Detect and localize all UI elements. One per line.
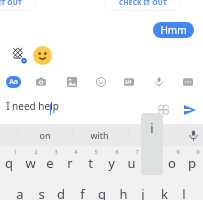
button[interactable]: Camera [32, 73, 50, 91]
staticText: with [90, 129, 109, 141]
button[interactable]: 9 [162, 146, 182, 175]
staticText: y [108, 154, 115, 172]
staticText: 2 [34, 148, 38, 155]
staticText: 6 [115, 148, 119, 155]
staticText: w [25, 154, 36, 172]
button[interactable]: Voice input [183, 124, 203, 146]
staticText: f [80, 185, 85, 200]
button[interactable]: 3 [40, 146, 60, 175]
staticText: 7 [135, 148, 139, 155]
staticText: i [150, 119, 154, 137]
button[interactable]: 2 [20, 146, 40, 175]
button[interactable]: Smart suggestions [158, 104, 169, 115]
staticText: r [67, 154, 73, 172]
button[interactable]: 1 [0, 146, 19, 175]
staticText: on [39, 129, 51, 141]
button[interactable]: g [92, 177, 112, 200]
button[interactable]: k [154, 177, 174, 200]
button[interactable]: a [10, 177, 30, 200]
button[interactable]: s [31, 177, 51, 200]
button[interactable]: 5 [80, 146, 100, 175]
button[interactable]: Hmm [153, 22, 194, 38]
staticText: j [141, 185, 145, 200]
staticText: l [182, 185, 186, 200]
staticText: 0 [196, 148, 200, 155]
staticText: s [38, 185, 45, 200]
button[interactable]: 6 [101, 146, 121, 175]
staticText: 3 [54, 148, 58, 155]
button[interactable]: 7 [121, 146, 141, 175]
staticText: p [188, 154, 196, 172]
staticText: Hmm [160, 23, 187, 37]
button[interactable]: f [72, 177, 92, 200]
button[interactable]: GIF [120, 73, 138, 91]
staticText: k [161, 185, 168, 200]
button[interactable]: CHECK IT OUT [0, 0, 36, 11]
staticText: h [119, 185, 128, 200]
button[interactable]: More options [179, 73, 197, 91]
button[interactable]: Text formatting [6, 76, 21, 88]
button[interactable]: Emoji [92, 73, 110, 91]
button[interactable]: with [72, 124, 127, 146]
staticText: t [88, 154, 93, 172]
button[interactable]: on [17, 124, 72, 146]
button[interactable]: I need help [0, 96, 148, 116]
staticText: 9 [176, 148, 180, 155]
staticText: 1 [13, 148, 17, 155]
button[interactable]: Gallery [63, 73, 81, 91]
button[interactable]: Voice message [150, 73, 168, 91]
staticText: a [16, 185, 24, 200]
staticText: o [168, 154, 176, 172]
button[interactable]: j [133, 177, 153, 200]
button[interactable]: CHECK IT OUT [104, 0, 182, 11]
staticText: d [57, 185, 65, 200]
staticText: q [5, 154, 13, 172]
button[interactable]: l [174, 177, 194, 200]
staticText: Aa [9, 77, 18, 87]
button[interactable] [128, 124, 183, 146]
button[interactable]: Sticker pack [8, 45, 28, 65]
button[interactable]: 4 [60, 146, 80, 175]
staticText: CHECK IT OUT [0, 0, 22, 7]
button[interactable]: d [51, 177, 71, 200]
button[interactable]: Smiley sticker [33, 46, 52, 65]
staticText: u [127, 154, 136, 172]
staticText: CHECK IT OUT [119, 0, 167, 7]
button[interactable]: h [113, 177, 133, 200]
button[interactable]: Send [179, 99, 201, 121]
button[interactable]: 0 [182, 146, 202, 175]
staticText: 4 [74, 148, 78, 155]
staticText: e [46, 154, 54, 172]
staticText: 5 [94, 148, 98, 155]
staticText: g [98, 185, 106, 200]
staticText: I need help [6, 99, 59, 113]
